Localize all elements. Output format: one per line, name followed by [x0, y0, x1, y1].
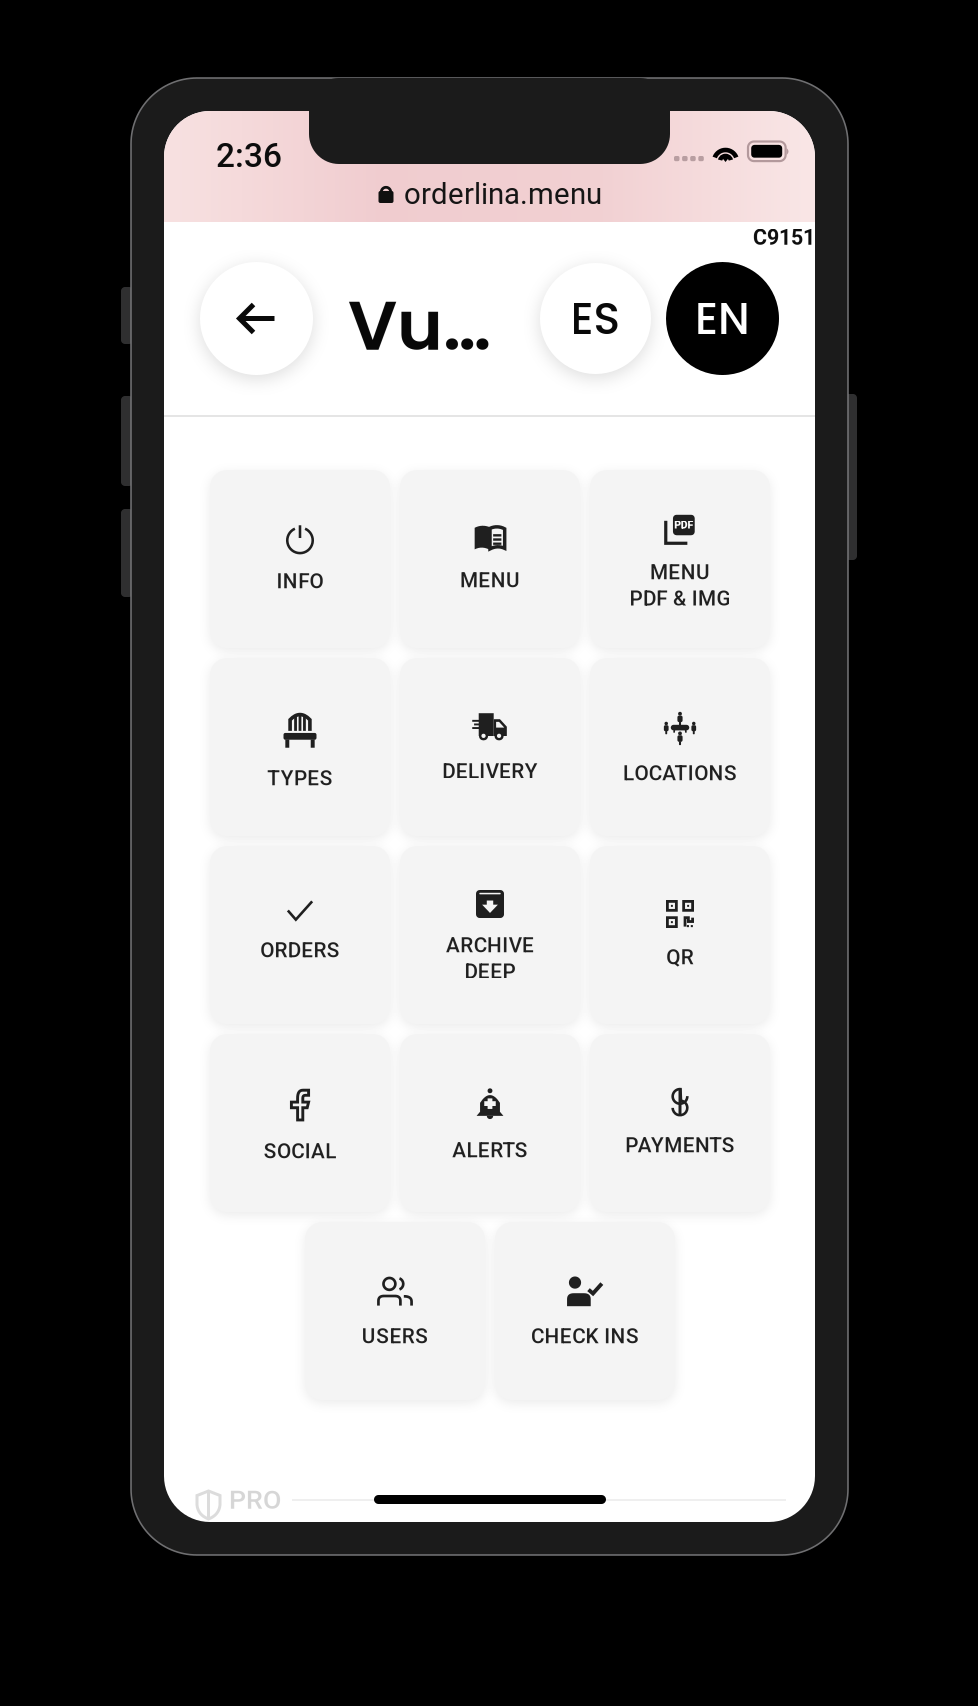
staticText: USERS: [362, 1324, 428, 1348]
staticText: DELIVERY: [442, 759, 538, 783]
staticText: PAYMENTS: [625, 1133, 735, 1157]
staticText: PRO: [229, 1484, 281, 1515]
button[interactable]: PAYMENTS: [590, 1034, 770, 1212]
button[interactable]: Back: [200, 262, 313, 375]
staticText: INFO: [276, 569, 323, 593]
button[interactable]: EN: [666, 262, 779, 375]
button[interactable]: LOCATIONS: [590, 658, 770, 836]
staticText: PDF: [674, 519, 693, 531]
staticText: LOCATIONS: [623, 761, 737, 785]
button[interactable]: CHECK INS: [495, 1222, 675, 1400]
staticText: 2:36: [216, 136, 282, 175]
staticText: ALERTS: [452, 1138, 528, 1162]
staticText: C9151: [753, 225, 815, 250]
staticText: QR: [666, 945, 694, 969]
staticText: ARCHIVE: [446, 933, 534, 957]
button[interactable]: ARCHIVE: [400, 846, 580, 1024]
staticText: PDF & IMG: [630, 586, 730, 610]
button[interactable]: ES: [540, 263, 651, 374]
staticText: CHECK INS: [531, 1324, 639, 1348]
button[interactable]: SOCIAL: [210, 1034, 390, 1212]
staticText: TYPES: [267, 766, 333, 790]
staticText: MENU: [650, 560, 710, 584]
button[interactable]: MENU: [400, 470, 580, 648]
staticText: ORDERS: [260, 938, 340, 962]
button[interactable]: INFO: [210, 470, 390, 648]
staticText: orderlina.menu: [404, 177, 602, 211]
staticText: Vu…: [348, 277, 491, 374]
staticText: MENU: [460, 568, 520, 592]
button[interactable]: ORDERS: [210, 846, 390, 1024]
staticText: DEEP: [464, 959, 515, 983]
button[interactable]: ALERTS: [400, 1034, 580, 1212]
button[interactable]: USERS: [305, 1222, 485, 1400]
button[interactable]: PDF: [590, 470, 770, 648]
button[interactable]: TYPES: [210, 658, 390, 836]
button[interactable]: QR: [590, 846, 770, 1024]
button[interactable]: DELIVERY: [400, 658, 580, 836]
staticText: EN: [695, 288, 750, 349]
staticText: ES: [570, 288, 620, 349]
staticText: SOCIAL: [264, 1139, 336, 1163]
